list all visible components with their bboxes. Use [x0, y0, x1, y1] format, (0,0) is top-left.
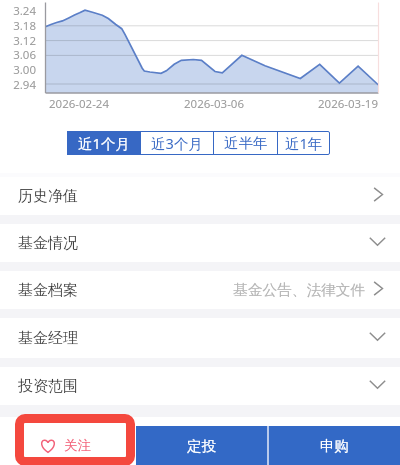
staticText: 2026-03-06 — [174, 96, 254, 112]
staticText: 2026-02-24 — [39, 96, 119, 112]
staticText: 近3个月 — [151, 133, 203, 153]
staticText: 基金经理 — [18, 329, 78, 348]
button[interactable]: 申购 — [269, 426, 400, 465]
staticText: 基金档案 — [18, 281, 78, 300]
staticText: 近1年 — [285, 133, 323, 153]
staticText: 关注 — [64, 437, 91, 454]
staticText: 2.94 — [0, 77, 36, 93]
staticText: 3.06 — [0, 47, 36, 63]
button[interactable]: 基金情况 — [0, 224, 400, 262]
staticText: 基金情况 — [18, 234, 78, 253]
button[interactable]: 近半年 — [214, 131, 277, 155]
staticText: 近半年 — [224, 134, 268, 152]
button[interactable]: 基金档案 — [0, 271, 400, 309]
button[interactable]: 近3个月 — [141, 131, 213, 155]
staticText: 历史净值 — [18, 187, 78, 206]
button[interactable]: 历史净值 — [0, 177, 400, 215]
button[interactable]: 定投 — [136, 426, 267, 465]
staticText: 近1个月 — [78, 133, 130, 153]
staticText: 申购 — [320, 437, 349, 455]
staticText: 3.18 — [0, 18, 36, 34]
staticText: 投资范围 — [18, 377, 78, 396]
staticText: 定投 — [187, 437, 216, 455]
staticText: 2026-03-19 — [308, 96, 388, 112]
button[interactable]: 近1年 — [278, 131, 330, 155]
button[interactable]: 近1个月 — [67, 131, 140, 155]
staticText: 基金公告、法律文件 — [233, 281, 366, 300]
staticText: 3.24 — [0, 3, 36, 19]
staticText: 3.00 — [0, 62, 36, 78]
button[interactable]: 投资范围 — [0, 367, 400, 405]
button[interactable]: 关注 — [0, 426, 136, 465]
staticText: 3.12 — [0, 33, 36, 49]
button[interactable]: 基金经理 — [0, 318, 400, 358]
